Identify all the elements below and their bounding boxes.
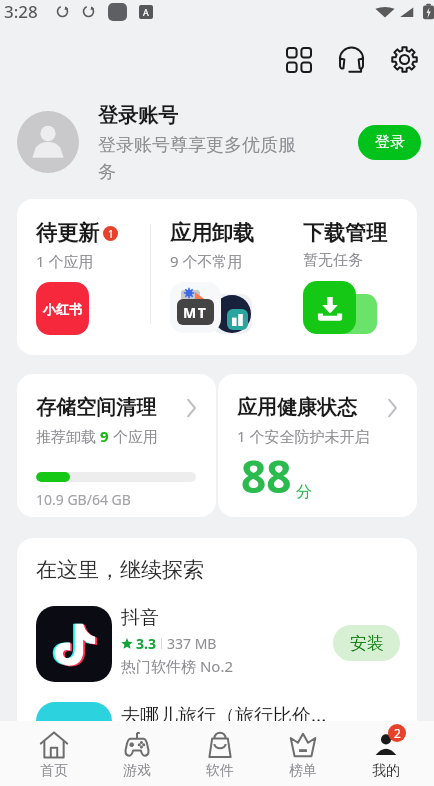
button[interactable]: 2 [344, 721, 427, 786]
staticText: 存储空间清理 [36, 395, 156, 420]
staticText: 软件 [206, 762, 234, 780]
button[interactable]: 去哪儿旅行（旅行比价... [36, 702, 400, 778]
staticText: 在这里，继续探索 [36, 557, 204, 583]
staticText: 2 [394, 725, 401, 741]
staticText: 抖音 [121, 606, 159, 630]
button[interactable]: 抖音 [36, 606, 400, 682]
button[interactable]: Customer support [331, 39, 372, 80]
button[interactable]: Settings [384, 39, 425, 80]
staticText: A [143, 6, 149, 18]
staticText: 3.3 [136, 634, 156, 653]
staticText: 应用健康状态 [237, 395, 357, 420]
staticText: 1 [108, 227, 114, 241]
staticText: 登录 [375, 133, 405, 152]
staticText: 分 [296, 482, 312, 502]
staticText: 登录账号 [98, 103, 178, 128]
button[interactable]: 登录账号 [0, 88, 434, 192]
button[interactable]: 榜单 [261, 721, 344, 786]
staticText: 1 个应用 [36, 251, 94, 271]
staticText: 登录账号尊享更多优质服务 [98, 134, 305, 184]
button[interactable]: 安装 [333, 625, 400, 661]
staticText: 去哪儿旅行（旅行比价... [121, 702, 327, 728]
button[interactable]: Apps [278, 39, 319, 80]
staticText: 3:28 [4, 0, 38, 23]
staticText: 337 MB [167, 634, 217, 653]
button[interactable]: 应用卸载 [151, 199, 284, 355]
staticText: 小红书 [43, 301, 82, 317]
staticText: 榜单 [289, 762, 317, 780]
button[interactable]: 应用健康状态 [218, 374, 417, 517]
button[interactable]: 下载管理 [284, 199, 417, 355]
button[interactable]: 游戏 [95, 721, 178, 786]
staticText: 安装 [350, 633, 384, 654]
button[interactable]: 登录 [358, 125, 421, 160]
button[interactable]: 待更新 [17, 199, 150, 355]
staticText: 1 个安全防护未开启 [237, 426, 370, 446]
staticText: 个应用 [109, 426, 158, 446]
staticText: 首页 [40, 762, 68, 780]
staticText: 88 [241, 446, 292, 506]
button[interactable]: 首页 [12, 721, 95, 786]
staticText: 热门软件榜 No.2 [121, 656, 233, 676]
button[interactable]: 软件 [178, 721, 261, 786]
button[interactable]: 存储空间清理 [17, 374, 216, 517]
staticText: 我的 [372, 762, 400, 780]
staticText: 10.9 GB/64 GB [36, 490, 131, 509]
staticText: 下载管理 [303, 220, 387, 246]
staticText: 9 [100, 426, 109, 446]
staticText: 暂无任务 [303, 251, 363, 270]
staticText: 游戏 [123, 762, 151, 780]
staticText: 推荐卸载 [36, 426, 100, 446]
staticText: MT [183, 303, 208, 322]
staticText: 9 个不常用 [170, 251, 243, 271]
staticText: 待更新 [36, 220, 99, 246]
staticText: 应用卸载 [170, 220, 254, 246]
